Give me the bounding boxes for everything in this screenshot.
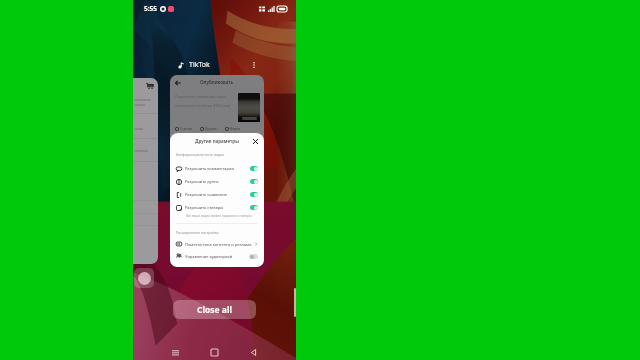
button[interactable]: Recents [169, 346, 181, 358]
button[interactable] [133, 78, 158, 264]
button[interactable]: Управление аудиторией [176, 250, 258, 262]
staticText: 5:55 [144, 4, 157, 13]
button[interactable]: Ссылки [175, 126, 193, 131]
button[interactable]: Разрешить сшивание [176, 188, 258, 201]
staticText: Другие параметры [195, 138, 239, 144]
button[interactable]: Разрешить стикеры [176, 201, 258, 214]
staticText: Поделитесь своими мыслями, [175, 94, 227, 99]
staticText: Управление аудиторией [185, 254, 233, 259]
staticText: Друзья [205, 126, 217, 131]
staticText: используйте их блоки #300 слов [175, 103, 231, 108]
staticText: Разрешить стикеры [185, 205, 224, 210]
staticText: Расширенные настройки [176, 230, 219, 235]
button[interactable]: More options [249, 60, 259, 70]
button[interactable]: Close all [173, 300, 256, 319]
staticText: Конфиденциальность видео [176, 152, 225, 157]
button[interactable]: Друзья [200, 126, 217, 131]
button[interactable]: Back [247, 346, 259, 358]
button[interactable]: Видео [225, 126, 241, 131]
staticText: Разрешить сшивание [185, 192, 227, 197]
staticText: Ссылки [180, 126, 193, 131]
staticText: Разрешить дуэты [185, 179, 219, 184]
staticText: Видео [230, 126, 241, 131]
button[interactable]: Разрешить комментарии [176, 162, 258, 175]
button[interactable]: Back [174, 79, 181, 86]
button[interactable]: Back [170, 75, 264, 267]
staticText: Разрешить комментарии [185, 166, 234, 171]
button[interactable]: Home [208, 346, 220, 358]
staticText: Close all [197, 304, 233, 316]
button[interactable]: Пометка типа контента и реклама [176, 238, 258, 250]
staticText: TikTok [189, 60, 210, 70]
button[interactable]: Close [251, 137, 259, 145]
staticText: Опубликовать [200, 79, 234, 85]
staticText: Пометка типа контента и реклама [185, 242, 252, 247]
staticText: Все ваши видео можно подавать в стикеры [186, 214, 252, 218]
button[interactable]: Разрешить дуэты [176, 175, 258, 188]
